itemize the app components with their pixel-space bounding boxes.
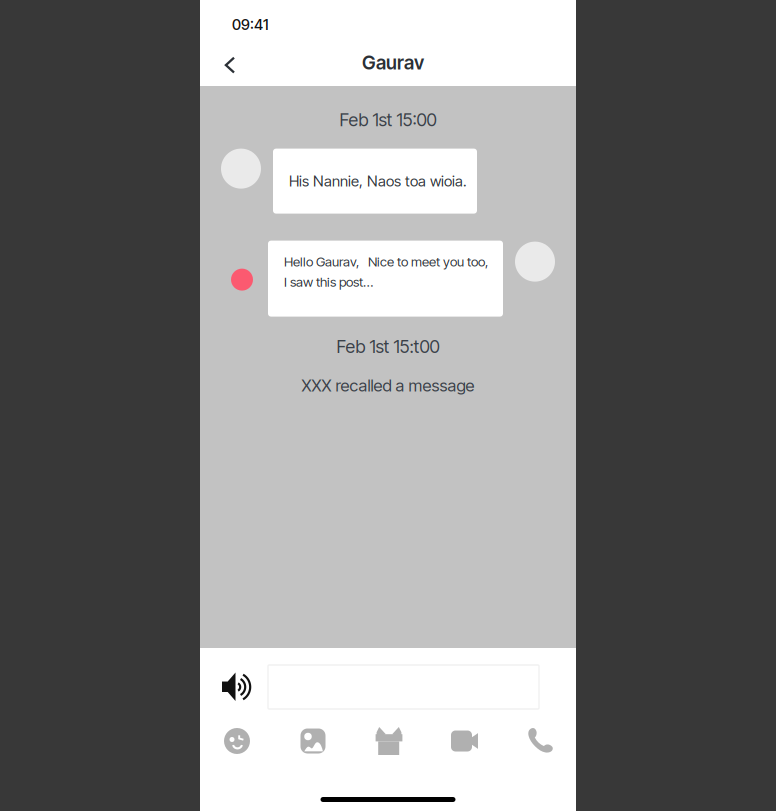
button[interactable]: Gift bbox=[375, 727, 403, 755]
staticText: Feb 1st 15:t00 bbox=[336, 336, 439, 357]
button[interactable]: Voice message bbox=[220, 665, 254, 709]
staticText: Gaurav bbox=[362, 51, 424, 74]
staticText: His Nannie, Naos toa wioia. bbox=[289, 172, 467, 190]
button[interactable]: Voice call bbox=[526, 727, 554, 755]
button[interactable]: Emoji bbox=[223, 727, 251, 755]
staticText: XXX recalled a message bbox=[301, 375, 474, 395]
button[interactable]: Video call bbox=[451, 730, 478, 751]
staticText: Feb 1st 15:00 bbox=[339, 109, 436, 131]
staticText: 09:41 bbox=[232, 15, 269, 34]
button[interactable]: Photos bbox=[299, 727, 327, 755]
staticText: I saw this post… bbox=[284, 274, 373, 290]
button[interactable]: Back bbox=[208, 44, 252, 86]
staticText: Hello Gaurav, Nice to meet you too, bbox=[284, 254, 488, 270]
